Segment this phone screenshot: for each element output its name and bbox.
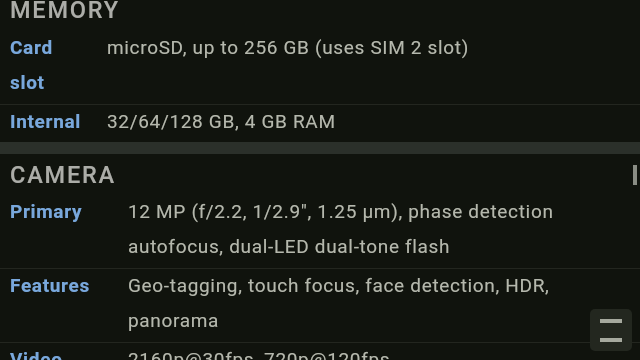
- button[interactable]: Internal: [0, 105, 640, 142]
- staticText: Primary: [10, 200, 128, 222]
- staticText: Internal: [10, 110, 107, 132]
- staticText: Card slot: [10, 36, 107, 94]
- staticText: CAMERA: [10, 161, 116, 189]
- staticText: Features: [10, 274, 128, 296]
- staticText: Video: [10, 348, 128, 360]
- staticText: Geo-tagging, touch focus, face detection…: [128, 274, 630, 332]
- staticText: 2160p@30fps, 720p@120fps: [128, 348, 391, 360]
- button[interactable]: Card slot: [0, 31, 640, 104]
- button[interactable]: Video: [0, 343, 640, 360]
- button[interactable]: Primary: [0, 195, 640, 268]
- button[interactable]: Features: [0, 269, 640, 342]
- staticText: 32/64/128 GB, 4 GB RAM: [107, 110, 336, 132]
- staticText: 12 MP (f/2.2, 1/2.9", 1.25 μm), phase de…: [128, 200, 630, 258]
- staticText: MEMORY: [10, 0, 120, 24]
- staticText: microSD, up to 256 GB (uses SIM 2 slot): [107, 36, 469, 58]
- button[interactable]: Menu: [590, 309, 632, 351]
